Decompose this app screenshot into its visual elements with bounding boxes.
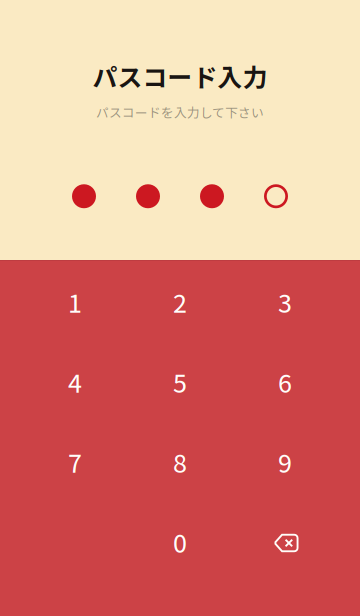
button[interactable]: 7 — [0, 422, 127, 502]
button[interactable]: 0 — [127, 502, 232, 582]
staticText: 2 — [173, 284, 187, 320]
button[interactable]: Delete — [232, 502, 360, 582]
staticText: 5 — [173, 364, 187, 400]
button[interactable]: 1 — [0, 262, 127, 342]
staticText: 3 — [278, 284, 292, 320]
button[interactable]: 5 — [127, 342, 232, 422]
staticText: パスコードを入力して下さい — [96, 103, 264, 121]
button[interactable]: 2 — [127, 262, 232, 342]
staticText: 4 — [68, 364, 82, 400]
staticText: 1 — [68, 284, 82, 320]
button[interactable]: 6 — [232, 342, 360, 422]
staticText: 0 — [173, 524, 187, 560]
staticText: 8 — [173, 444, 187, 480]
button[interactable]: 4 — [0, 342, 127, 422]
button[interactable]: 8 — [127, 422, 232, 502]
button[interactable]: 9 — [232, 422, 360, 502]
button[interactable]: 3 — [232, 262, 360, 342]
staticText: 9 — [278, 444, 292, 480]
staticText: パスコード入力 — [92, 58, 267, 94]
staticText: 7 — [68, 444, 82, 480]
staticText: 6 — [278, 364, 292, 400]
